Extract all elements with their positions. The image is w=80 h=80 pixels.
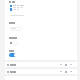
button[interactable]: Toggle enable — [9, 53, 17, 57]
button[interactable] — [10, 27, 22, 31]
button[interactable] — [5, 69, 77, 74]
button[interactable] — [5, 62, 77, 67]
